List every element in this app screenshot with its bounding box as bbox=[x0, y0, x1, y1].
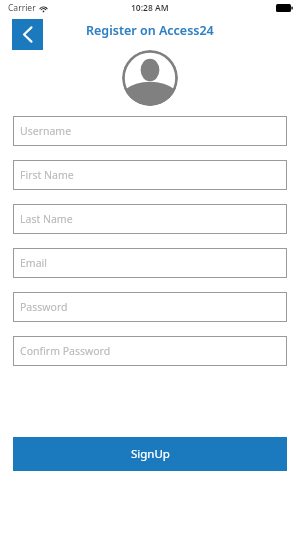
staticText: Carrier bbox=[8, 2, 36, 14]
button[interactable]: Confirm Password bbox=[13, 336, 287, 366]
button[interactable]: First Name bbox=[13, 160, 287, 190]
staticText: Password bbox=[20, 300, 68, 314]
staticText: Last Name bbox=[20, 212, 73, 226]
button[interactable]: Username bbox=[13, 116, 287, 146]
staticText: 10:28 AM bbox=[131, 2, 169, 14]
button[interactable]: Profile photo bbox=[122, 50, 178, 106]
button[interactable]: SignUp bbox=[13, 437, 287, 471]
staticText: Username bbox=[20, 124, 72, 138]
staticText: Confirm Password bbox=[20, 344, 111, 358]
staticText: SignUp bbox=[131, 446, 170, 462]
button[interactable]: Email bbox=[13, 248, 287, 278]
button[interactable]: Password bbox=[13, 292, 287, 322]
staticText: Email bbox=[20, 256, 47, 270]
button[interactable]: Back bbox=[12, 19, 43, 50]
staticText: Register on Access24 bbox=[86, 22, 214, 39]
button[interactable]: Last Name bbox=[13, 204, 287, 234]
staticText: First Name bbox=[20, 168, 74, 182]
